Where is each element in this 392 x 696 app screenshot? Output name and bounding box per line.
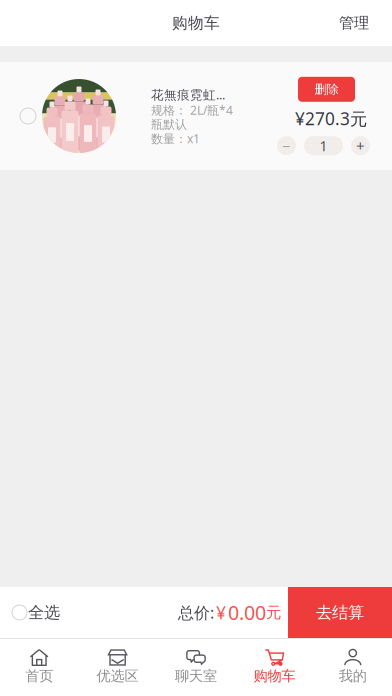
staticText: 1 bbox=[319, 136, 327, 155]
staticText: 规格： 2L/瓶*4 bbox=[151, 102, 233, 118]
staticText: 花無痕霓虹... bbox=[151, 86, 225, 103]
button[interactable]: 聊天室 bbox=[157, 639, 235, 696]
staticText: 管理 bbox=[339, 13, 369, 32]
staticText: 数量：x1 bbox=[151, 130, 200, 147]
staticText: 聊天室 bbox=[175, 667, 217, 685]
button[interactable]: 去结算 bbox=[288, 587, 392, 638]
staticText: 全选 bbox=[28, 602, 60, 623]
button[interactable]: 我的 bbox=[314, 639, 392, 696]
staticText: 购物车 bbox=[172, 13, 220, 33]
button[interactable]: 首页 bbox=[0, 639, 78, 696]
staticText: 删除 bbox=[314, 81, 338, 97]
button[interactable]: 全选 bbox=[0, 587, 60, 638]
button[interactable]: 减少数量 bbox=[277, 136, 296, 155]
button[interactable]: 删除 bbox=[298, 77, 370, 102]
staticText: ¥270.3元 bbox=[295, 107, 367, 130]
staticText: 我的 bbox=[339, 667, 367, 685]
staticText: 元 bbox=[266, 603, 281, 622]
button[interactable]: 增加数量 bbox=[351, 136, 370, 155]
button[interactable]: 优选区 bbox=[78, 639, 157, 696]
button[interactable]: 管理 bbox=[339, 13, 392, 32]
staticText: 优选区 bbox=[97, 667, 139, 685]
staticText: 瓶默认 bbox=[151, 117, 187, 132]
button[interactable]: 购物车 bbox=[235, 639, 314, 696]
staticText: ¥ bbox=[216, 601, 226, 624]
button[interactable]: 选择商品 bbox=[0, 108, 42, 124]
staticText: 去结算 bbox=[316, 602, 364, 623]
staticText: + bbox=[356, 135, 365, 156]
staticText: − bbox=[282, 136, 290, 155]
staticText: 首页 bbox=[25, 667, 53, 685]
staticText: 0.00 bbox=[228, 599, 266, 626]
staticText: 购物车 bbox=[253, 667, 295, 685]
staticText: 总价: bbox=[178, 602, 214, 623]
